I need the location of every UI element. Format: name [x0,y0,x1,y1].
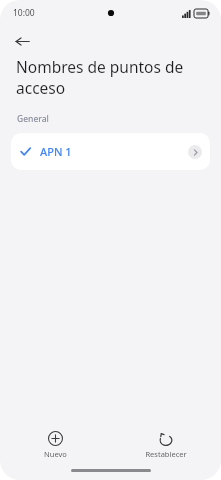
button[interactable]: Nuevo [0,429,110,461]
staticText: Nombres de puntos de acceso [16,56,211,99]
staticText: Nuevo [44,449,67,459]
button[interactable]: APN 1 [11,133,210,170]
staticText: 10:00 [13,7,35,19]
staticText: APN 1 [40,144,72,159]
staticText: General [17,113,49,125]
button[interactable]: Back [8,27,36,55]
staticText: Restablecer [145,449,187,459]
button[interactable]: Restablecer [110,429,221,461]
button[interactable]: Edit APN 1 [188,145,202,159]
